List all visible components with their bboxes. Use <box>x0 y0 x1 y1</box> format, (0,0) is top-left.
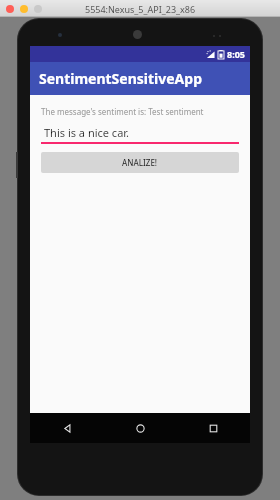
staticText: The message's sentiment is: Test sentime… <box>41 106 204 117</box>
button[interactable]: Zoom <box>34 5 42 13</box>
button[interactable]: Home <box>104 413 177 443</box>
staticText: 8:05 <box>227 48 245 60</box>
button[interactable]: ANALIZE! <box>41 152 239 173</box>
button[interactable]: This is a nice car. <box>41 124 239 144</box>
button[interactable]: Recent apps <box>177 413 250 443</box>
button[interactable]: Minimize <box>20 5 28 13</box>
button[interactable]: Close <box>6 5 14 13</box>
staticText: This is a nice car. <box>44 125 130 140</box>
staticText: 5554:Nexus_5_API_23_x86 <box>85 3 196 15</box>
staticText: ANALIZE! <box>122 157 158 168</box>
button[interactable]: Back <box>30 413 104 443</box>
staticText: SentimentSensitiveApp <box>39 69 203 88</box>
